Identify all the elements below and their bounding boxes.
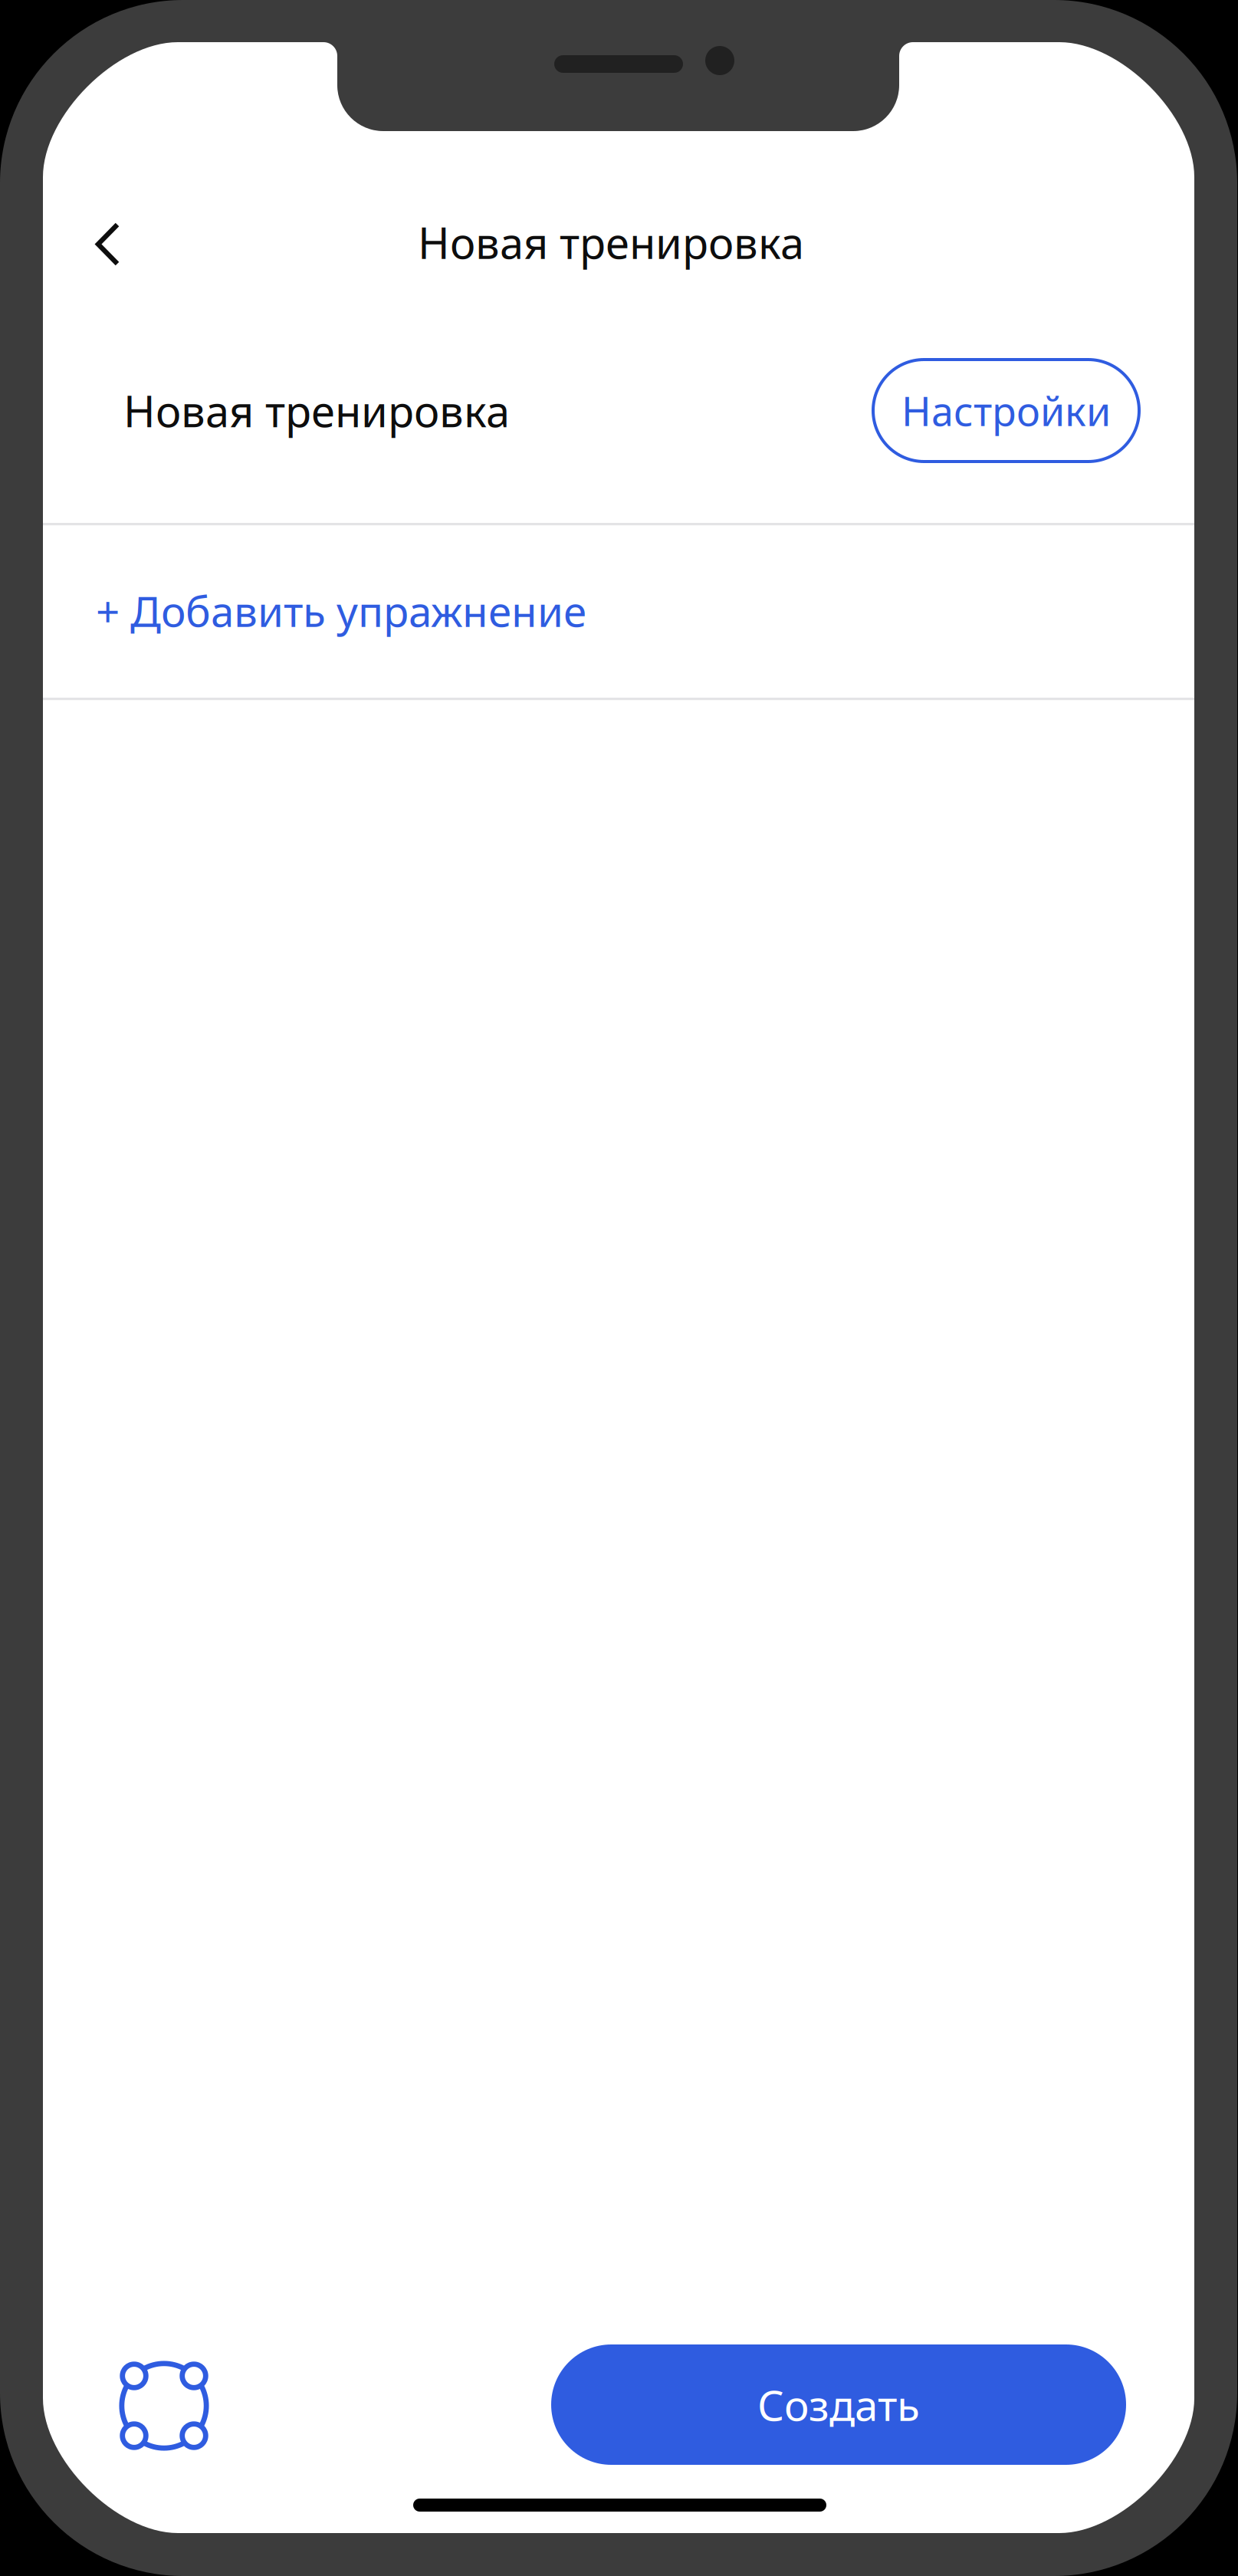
button[interactable]: Создать xyxy=(551,2344,1126,2465)
button[interactable]: + Добавить упражнение xyxy=(43,523,1194,698)
button[interactable]: Настройки xyxy=(873,360,1139,462)
staticText: Новая тренировка xyxy=(123,381,510,440)
button[interactable]: Новая тренировка xyxy=(43,333,809,488)
staticText: + Добавить упражнение xyxy=(96,582,586,639)
button[interactable]: Шаблон xyxy=(99,2341,229,2470)
button[interactable]: Назад xyxy=(67,194,148,294)
staticText: Новая тренировка xyxy=(418,213,804,272)
staticText: Настройки xyxy=(901,383,1111,438)
staticText: Создать xyxy=(757,2376,920,2433)
